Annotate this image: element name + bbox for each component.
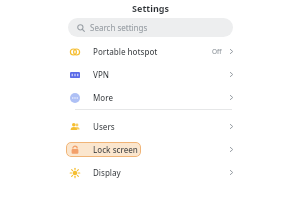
other: Display xyxy=(70,168,80,178)
staticText: Users xyxy=(93,121,115,132)
staticText: Display xyxy=(93,167,121,178)
staticText: More xyxy=(93,92,114,103)
button[interactable]: Display xyxy=(0,161,300,184)
staticText: Lock screen xyxy=(93,144,138,155)
button[interactable]: VPN xyxy=(0,63,300,86)
other: VPN xyxy=(70,70,80,80)
staticText: Settings xyxy=(132,2,169,14)
other: More xyxy=(70,93,80,103)
other: Portable hotspot xyxy=(70,47,80,57)
button[interactable]: More xyxy=(0,86,300,109)
other: Lock screen xyxy=(70,145,80,155)
staticText: Off xyxy=(212,47,222,56)
button[interactable]: Search settings xyxy=(68,18,233,37)
button[interactable]: Lock screen xyxy=(0,138,300,161)
staticText: Search settings xyxy=(90,22,148,33)
button[interactable]: Users xyxy=(0,115,300,138)
staticText: VPN xyxy=(93,69,110,80)
button[interactable]: Portable hotspot xyxy=(0,40,300,63)
staticText: Portable hotspot xyxy=(93,46,158,57)
other: Users xyxy=(70,122,80,132)
